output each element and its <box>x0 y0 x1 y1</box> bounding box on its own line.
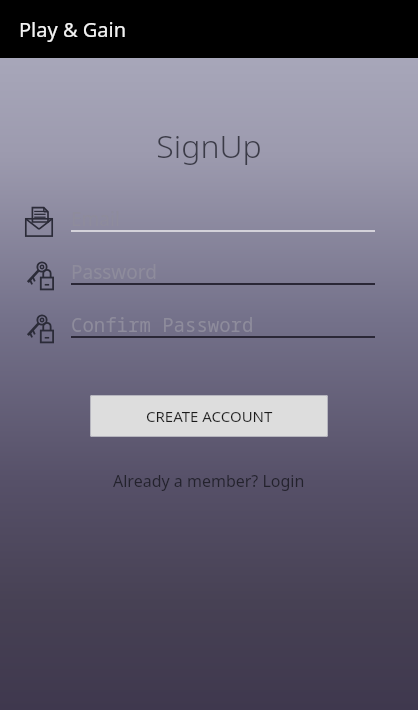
staticText: Password <box>71 259 157 285</box>
button[interactable]: CREATE ACCOUNT <box>90 395 328 437</box>
staticText: Already a member? Login <box>113 470 305 492</box>
button[interactable]: Confirm Password <box>0 304 418 357</box>
button[interactable]: Password <box>0 251 418 304</box>
button[interactable]: Email <box>0 198 418 251</box>
staticText: Confirm Password <box>71 312 254 338</box>
button[interactable]: Already a member? Login <box>103 466 315 496</box>
staticText: Email <box>71 206 120 232</box>
staticText: Play & Gain <box>19 16 127 43</box>
staticText: SignUp <box>0 124 418 168</box>
staticText: CREATE ACCOUNT <box>146 406 273 426</box>
